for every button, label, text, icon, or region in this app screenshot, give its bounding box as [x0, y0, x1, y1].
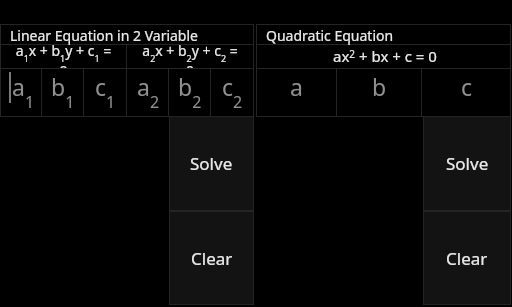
button[interactable]: Enter a — [256, 68, 337, 117]
button[interactable]: Enter c — [422, 68, 511, 117]
button[interactable]: Quadratic Equation — [257, 25, 511, 44]
staticText: ax2 + bx + c = 0 — [333, 46, 437, 66]
button[interactable]: Clear — [424, 212, 510, 304]
staticText: 0 — [127, 61, 253, 68]
staticText: b1 — [51, 71, 75, 112]
staticText: b2 — [178, 71, 202, 112]
staticText: c1 — [95, 71, 116, 112]
staticText: b — [372, 71, 387, 102]
button[interactable]: Enter a2 — [127, 68, 169, 117]
staticText: Solve — [190, 152, 233, 175]
staticText: Solve — [446, 152, 489, 175]
button[interactable]: Enter c2 — [211, 68, 254, 117]
button[interactable]: Linear Equation in 2 Variable — [1, 25, 254, 44]
button[interactable]: Solve — [424, 117, 510, 210]
staticText: a2x + b2y + c2 = — [127, 45, 253, 64]
button[interactable]: Enter b1 — [42, 68, 84, 117]
staticText: Clear — [191, 247, 233, 270]
button[interactable]: Enter b — [337, 68, 422, 117]
button[interactable]: Solve — [170, 117, 253, 210]
staticText: a1 — [12, 71, 35, 112]
staticText: a1x + b1y + c1 = — [1, 45, 126, 64]
button[interactable]: Enter b2 — [169, 68, 211, 117]
staticText: c2 — [222, 71, 243, 112]
staticText: 0 — [1, 61, 126, 68]
staticText: a — [290, 71, 303, 102]
button[interactable]: Enter a1 — [0, 68, 42, 117]
staticText: a2 — [137, 71, 160, 112]
staticText: Clear — [446, 247, 488, 270]
staticText: Quadratic Equation — [266, 26, 394, 45]
staticText: c — [461, 71, 473, 102]
button[interactable]: Enter c1 — [84, 68, 127, 117]
button[interactable]: Clear — [170, 212, 253, 304]
staticText: Linear Equation in 2 Variable — [10, 26, 198, 45]
